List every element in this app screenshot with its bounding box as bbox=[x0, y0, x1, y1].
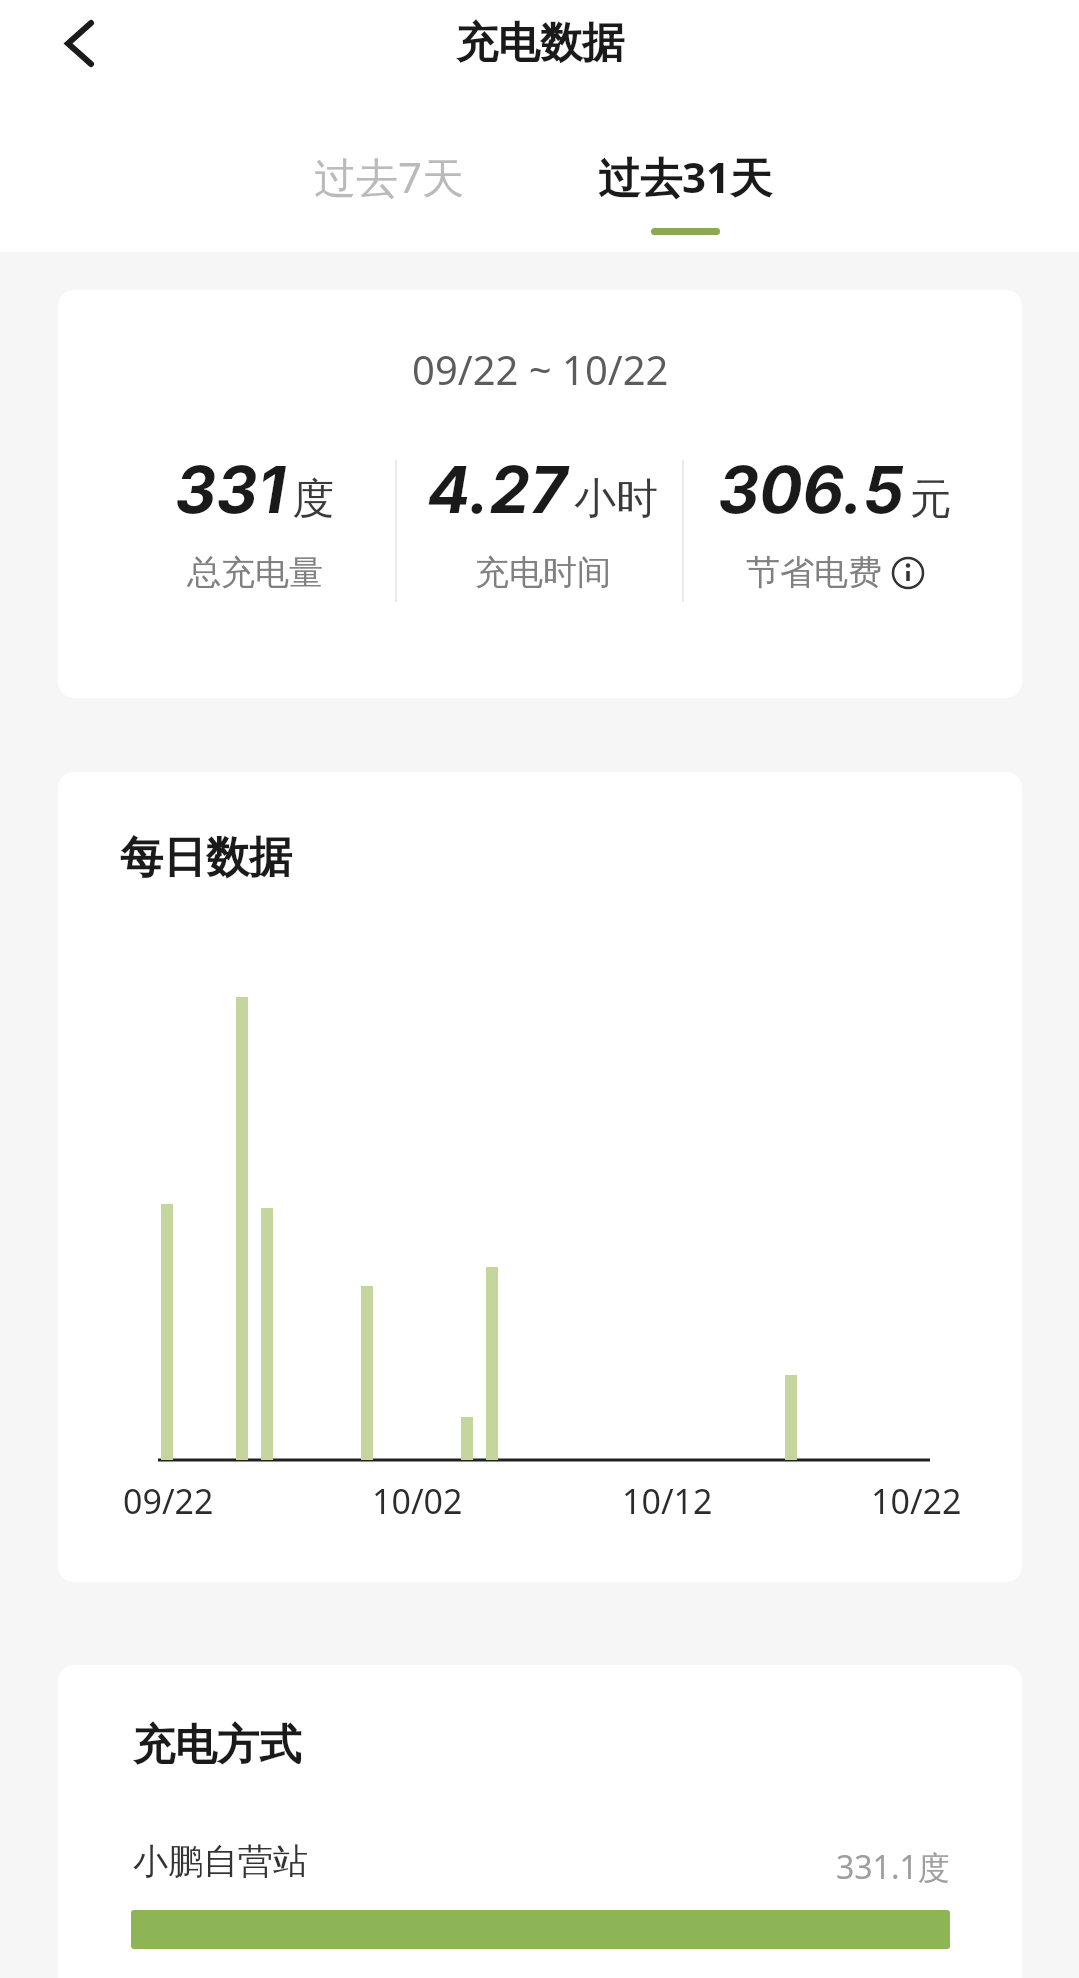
staticText: 09/22 ~ 10/22 bbox=[412, 342, 669, 396]
staticText: 小鹏自营站 bbox=[133, 1839, 308, 1883]
staticText: 10/12 bbox=[622, 1478, 713, 1524]
staticText: 充电时间 bbox=[475, 551, 611, 594]
staticText: 过去7天 bbox=[314, 148, 465, 205]
staticText: 10/22 bbox=[871, 1478, 962, 1524]
button[interactable] bbox=[892, 557, 924, 589]
staticText: 每日数据 bbox=[120, 831, 292, 885]
staticText: 度 bbox=[292, 473, 334, 526]
button[interactable] bbox=[51, 15, 107, 71]
staticText: 10/02 bbox=[372, 1478, 463, 1524]
staticText: 331.1度 bbox=[836, 1845, 950, 1889]
staticText: 过去31天 bbox=[598, 148, 773, 205]
button[interactable]: 过去31天 bbox=[598, 148, 773, 205]
button[interactable]: 过去7天 bbox=[314, 148, 465, 205]
staticText: 小时 bbox=[574, 473, 658, 526]
staticText: 331 bbox=[175, 451, 286, 528]
staticText: 元 bbox=[910, 473, 952, 526]
staticText: 306.5 bbox=[718, 451, 904, 528]
staticText: 节省电费 bbox=[746, 551, 882, 594]
staticText: 充电数据 bbox=[456, 17, 624, 70]
staticText: 09/22 bbox=[123, 1478, 214, 1524]
staticText: 总充电量 bbox=[187, 551, 323, 594]
staticText: 4.27 bbox=[427, 451, 568, 528]
staticText: 充电方式 bbox=[133, 1719, 301, 1772]
